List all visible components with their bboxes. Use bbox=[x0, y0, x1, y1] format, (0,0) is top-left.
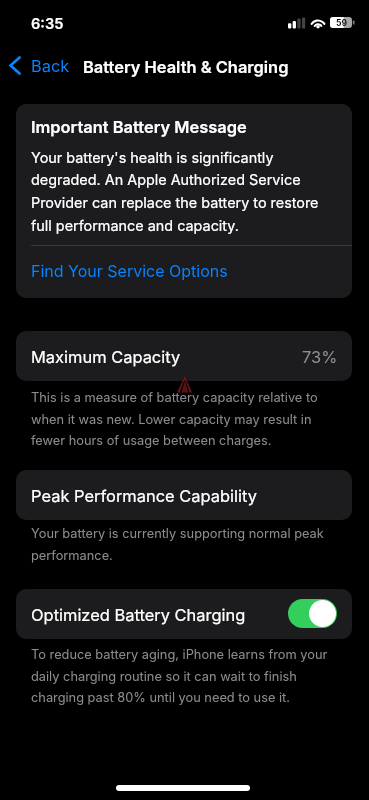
staticText: Important Battery Message bbox=[31, 117, 247, 137]
staticText: Peak Performance Capability bbox=[31, 486, 257, 506]
staticText: Find Your Service Options bbox=[31, 261, 228, 280]
staticText: To reduce battery aging, iPhone learns f… bbox=[31, 647, 339, 705]
staticText: 59 bbox=[336, 18, 348, 28]
staticText: This is a measure of battery capacity re… bbox=[31, 390, 339, 448]
button[interactable]: Maximum Capacity bbox=[16, 331, 352, 381]
button[interactable]: Optimized Battery Charging, on bbox=[288, 599, 337, 628]
staticText: Your battery's health is significantly d… bbox=[31, 149, 338, 235]
button[interactable]: Peak Performance Capability bbox=[16, 470, 352, 520]
staticText: Maximum Capacity bbox=[31, 347, 181, 367]
staticText: Optimized Battery Charging bbox=[31, 605, 246, 625]
staticText: 73% bbox=[302, 347, 338, 367]
staticText: Battery Health & Charging bbox=[83, 57, 289, 77]
button[interactable]: Find Your Service Options bbox=[16, 246, 352, 298]
button[interactable]: Back bbox=[2, 50, 76, 82]
staticText: Back bbox=[31, 56, 70, 76]
staticText: Your battery is currently supporting nor… bbox=[31, 526, 339, 563]
staticText: 6:35 bbox=[31, 15, 64, 33]
